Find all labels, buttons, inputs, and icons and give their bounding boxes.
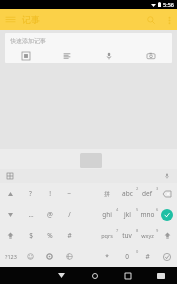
button[interactable]: Emoji [21,246,40,267]
staticText: 8 [136,228,139,233]
staticText: 记事 [22,14,40,25]
button[interactable]: Delete [157,183,177,204]
button[interactable]: ?123 [0,246,21,267]
staticText: # [67,231,72,240]
button[interactable]: jkl [117,204,137,225]
button[interactable]: / [59,204,79,225]
button[interactable]: mno [137,204,157,225]
staticText: 快速添加记事 [10,37,46,45]
button[interactable]: Chinese input [97,183,117,204]
button[interactable]: New drawing [46,48,88,63]
button[interactable]: # [59,225,79,246]
button[interactable]: * [97,246,117,267]
button[interactable]: pqrs [97,225,117,246]
staticText: 5:56 [163,1,174,8]
staticText: … [28,210,34,219]
button[interactable]: Hide keyboard [144,267,177,284]
staticText: mno [140,210,155,219]
staticText: % [47,231,53,240]
button[interactable]: def [137,183,157,204]
button[interactable]: abc [117,183,137,204]
button[interactable]: ? [21,183,40,204]
staticText: jkl [124,210,131,219]
button[interactable]: ghi [97,204,117,225]
staticText: ?123 [5,253,17,260]
staticText: 5 [136,207,139,212]
button[interactable]: Change language [59,246,79,267]
button[interactable]: wxyz [137,225,157,246]
staticText: 9 [156,228,159,233]
button[interactable]: # [137,246,157,267]
staticText: abc [122,189,133,198]
staticText: 拼 [104,190,110,198]
button[interactable]: 0 [117,246,137,267]
button[interactable]: Search [141,10,161,30]
button[interactable]: $ [21,225,40,246]
staticText: 0 [136,249,139,254]
button[interactable]: ! [40,183,59,204]
button[interactable]: Confirm [157,246,177,267]
button[interactable]: % [40,225,59,246]
staticText: pqrs [101,232,113,239]
staticText: # [145,252,150,261]
button[interactable]: Home [78,267,111,284]
staticText: 4 [116,207,119,212]
button[interactable]: Open navigation drawer [0,9,21,30]
button[interactable]: Next [0,204,21,225]
button[interactable]: Voice input [157,169,177,183]
staticText: tuv [122,231,132,240]
staticText: 6 [156,207,159,212]
button[interactable]: New voice note [88,48,130,63]
button[interactable]: Back [45,267,78,284]
button[interactable]: 快速添加记事 [5,33,172,48]
staticText: 2 [136,186,139,191]
button[interactable]: More options [161,12,177,28]
button[interactable]: Previous [0,183,21,204]
staticText: @ [47,210,53,219]
staticText: wxyz [141,232,154,239]
staticText: 7 [116,228,119,233]
staticText: ! [49,189,51,198]
button[interactable]: Recent apps [111,267,144,284]
button[interactable]: ~ [59,183,79,204]
staticText: 0 [125,252,129,261]
button[interactable]: New list [5,48,46,63]
button[interactable]: … [21,204,40,225]
button[interactable]: Keyboard settings [40,246,59,267]
button[interactable]: @ [40,204,59,225]
staticText: def [142,189,152,198]
button[interactable]: Key [157,204,177,225]
button[interactable]: Switch input language [0,169,20,183]
staticText: ? [29,189,32,198]
staticText: * [105,252,109,261]
button[interactable]: Shift [157,225,177,246]
staticText: 3 [156,186,159,191]
staticText: / [68,210,71,219]
staticText: $ [29,231,33,240]
staticText: ~ [67,189,71,198]
button[interactable]: Shift [0,225,21,246]
staticText: ghi [102,210,112,219]
button[interactable]: New photo note [130,48,172,63]
button[interactable]: tuv [117,225,137,246]
